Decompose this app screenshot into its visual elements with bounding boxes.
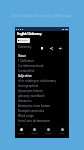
button[interactable]: Share xyxy=(48,45,54,51)
staticText: Dictionary xyxy=(18,45,32,49)
button[interactable]: Dictionary xyxy=(17,38,30,43)
staticText: Saved xyxy=(45,132,52,135)
staticText: More xyxy=(59,132,65,135)
staticText: Antonyms: none known xyxy=(18,104,51,108)
staticText: English Dictionary xyxy=(17,31,42,36)
staticText: Example sentences xyxy=(18,109,45,113)
staticText: Adjective xyxy=(18,74,32,78)
staticText: thesaurus xyxy=(18,99,32,103)
staticText: Home xyxy=(18,132,25,135)
staticText: Search xyxy=(31,132,38,135)
staticText: Noun xyxy=(18,54,27,58)
button[interactable]: Pronounce xyxy=(57,45,63,51)
button[interactable]: More xyxy=(55,125,69,138)
staticText: Synonyms: lexicon xyxy=(18,89,43,93)
staticText: of or relating to a dictionary xyxy=(18,79,56,83)
staticText: glossary, wordbook xyxy=(18,94,45,98)
staticText: from Latin dictionarium xyxy=(18,119,51,123)
staticText: 1.Definition xyxy=(18,59,34,63)
staticText: See also: lexicon xyxy=(18,124,41,128)
staticText: Dictionary xyxy=(19,39,29,42)
staticText: Word origin xyxy=(18,114,35,118)
button[interactable]: Home xyxy=(15,125,28,138)
staticText: 2.a reference book xyxy=(18,64,44,68)
button[interactable]: Bookmark xyxy=(39,45,45,51)
staticText: 3.a word list xyxy=(18,69,35,73)
staticText: Best English Dictionary Offline App xyxy=(12,13,73,18)
staticText: lexicographical xyxy=(18,84,39,88)
button[interactable]: Search xyxy=(28,125,41,138)
button[interactable]: Saved xyxy=(41,125,55,138)
